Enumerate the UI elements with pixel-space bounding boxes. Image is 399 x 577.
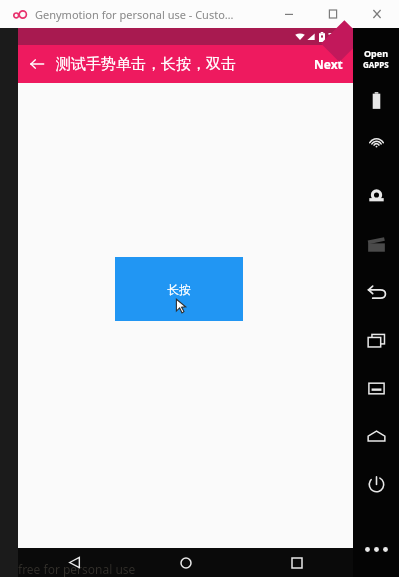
button[interactable]: Minimize — [267, 0, 311, 28]
button[interactable]: Next — [314, 56, 343, 72]
button[interactable]: Home — [353, 412, 399, 460]
button[interactable]: Maximize — [311, 0, 355, 28]
button[interactable]: More options — [353, 531, 399, 567]
button[interactable]: Open GAPPS — [353, 40, 399, 76]
button[interactable]: 长按 — [115, 257, 243, 321]
button[interactable]: Menu — [353, 364, 399, 412]
staticText: Next — [314, 56, 343, 72]
button[interactable]: GPS — [353, 124, 399, 172]
staticText: Genymotion for personal use - Custo… — [35, 7, 234, 22]
button[interactable]: Screen recorder — [353, 220, 399, 268]
button[interactable]: Home — [171, 548, 201, 577]
button[interactable]: Back — [59, 548, 89, 577]
staticText: Open — [364, 47, 389, 59]
staticText: 3:02 — [328, 30, 348, 44]
button[interactable]: Recent apps — [353, 316, 399, 364]
button[interactable]: Close — [355, 0, 399, 28]
button[interactable]: Camera — [353, 172, 399, 220]
staticText: GAPPS — [363, 59, 389, 70]
button[interactable]: Back — [18, 45, 56, 83]
button[interactable]: Back — [353, 268, 399, 316]
staticText: free for personal use — [18, 561, 136, 577]
button[interactable]: Recents — [282, 548, 312, 577]
staticText: 测试手势单击，长按，双击 — [56, 55, 236, 74]
staticText: 长按 — [167, 282, 191, 297]
button[interactable]: Battery — [353, 76, 399, 124]
button[interactable]: Power — [353, 460, 399, 508]
